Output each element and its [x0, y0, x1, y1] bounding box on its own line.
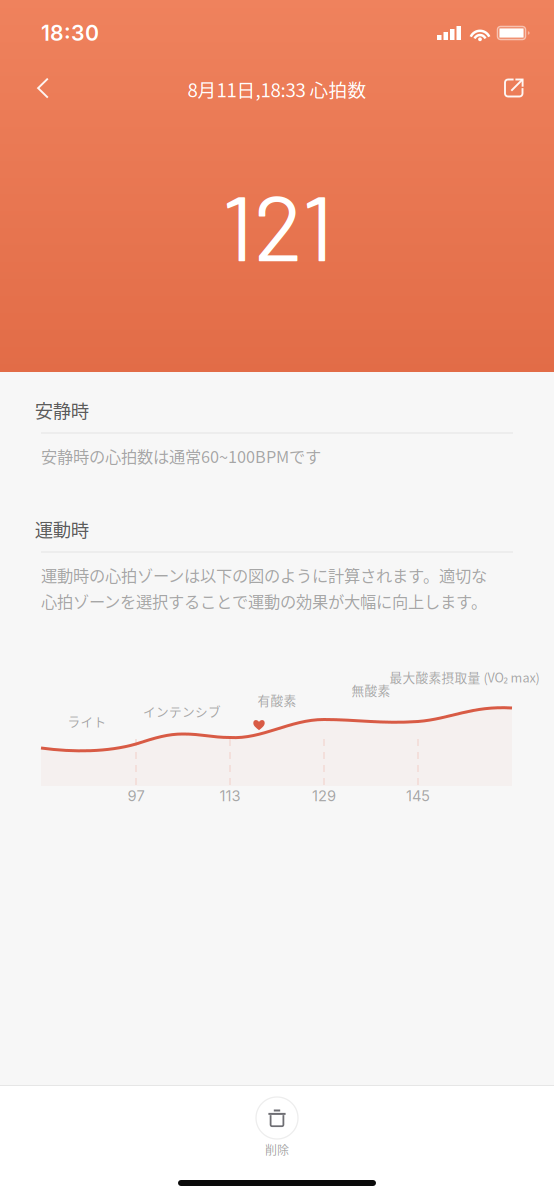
staticText: インテンシブ	[143, 702, 221, 720]
staticText: 145	[406, 787, 430, 805]
staticText: 削除	[265, 1141, 289, 1158]
staticText: 安静時の心拍数は通常60~100BPMです	[41, 444, 321, 468]
staticText: 113	[219, 787, 240, 805]
staticText: 運動時の心拍ゾーンは以下の図のように計算されます。適切な	[41, 563, 487, 587]
staticText: 心拍ゾーンを選択することで運動の効果が大幅に向上します。	[41, 589, 487, 613]
staticText: 121	[221, 169, 333, 280]
button[interactable]: Share	[492, 66, 536, 110]
staticText: 安静時	[35, 397, 89, 423]
staticText: 129	[312, 787, 336, 805]
button[interactable]: 削除	[217, 1092, 337, 1166]
staticText: ライト	[67, 712, 106, 730]
button[interactable]: Back	[21, 66, 65, 110]
staticText: 無酸素	[351, 681, 390, 699]
staticText: 最大酸素摂取量 (VO₂ max)	[389, 668, 539, 686]
staticText: 運動時	[35, 516, 89, 542]
staticText: 18:30	[41, 20, 99, 46]
staticText: 97	[127, 787, 144, 805]
staticText: 8月11日,18:33 心拍数	[187, 75, 366, 102]
staticText: 有酸素	[257, 691, 296, 709]
